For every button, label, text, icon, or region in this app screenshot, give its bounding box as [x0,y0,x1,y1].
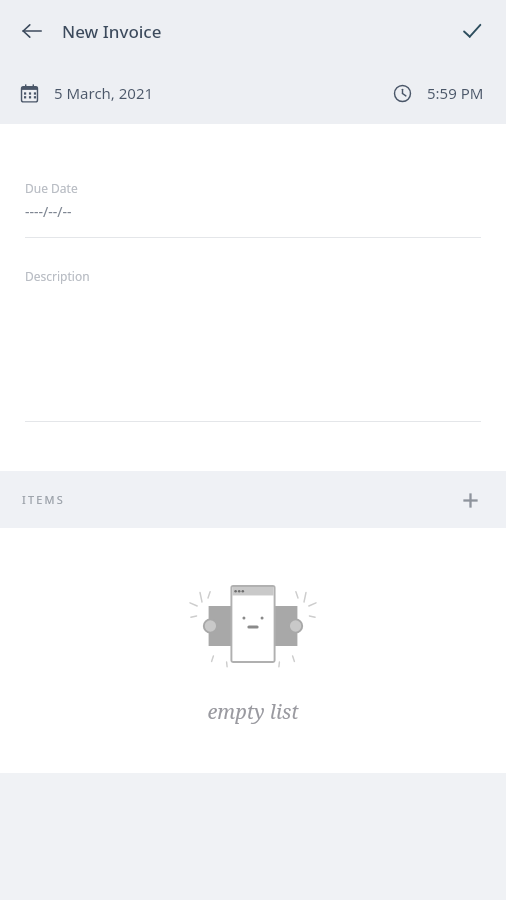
button[interactable]: 5 March, 2021 [18,82,154,104]
staticText: 5:59 PM [427,83,484,103]
staticText: 5 March, 2021 [54,83,154,103]
staticText: ITEMS [22,492,65,507]
staticText: New Invoice [62,20,162,43]
staticText: Description [25,268,90,284]
staticText: Due Date [25,180,78,196]
button[interactable]: 5:59 PM [391,82,484,104]
button[interactable]: Add item [448,478,492,522]
staticText: ----/--/-- [25,202,72,221]
staticText: empty list [207,698,299,725]
button[interactable]: Due Date [25,180,481,238]
button[interactable]: Save invoice [450,9,494,53]
button[interactable]: Back [10,9,54,53]
button[interactable]: Description [25,268,481,422]
